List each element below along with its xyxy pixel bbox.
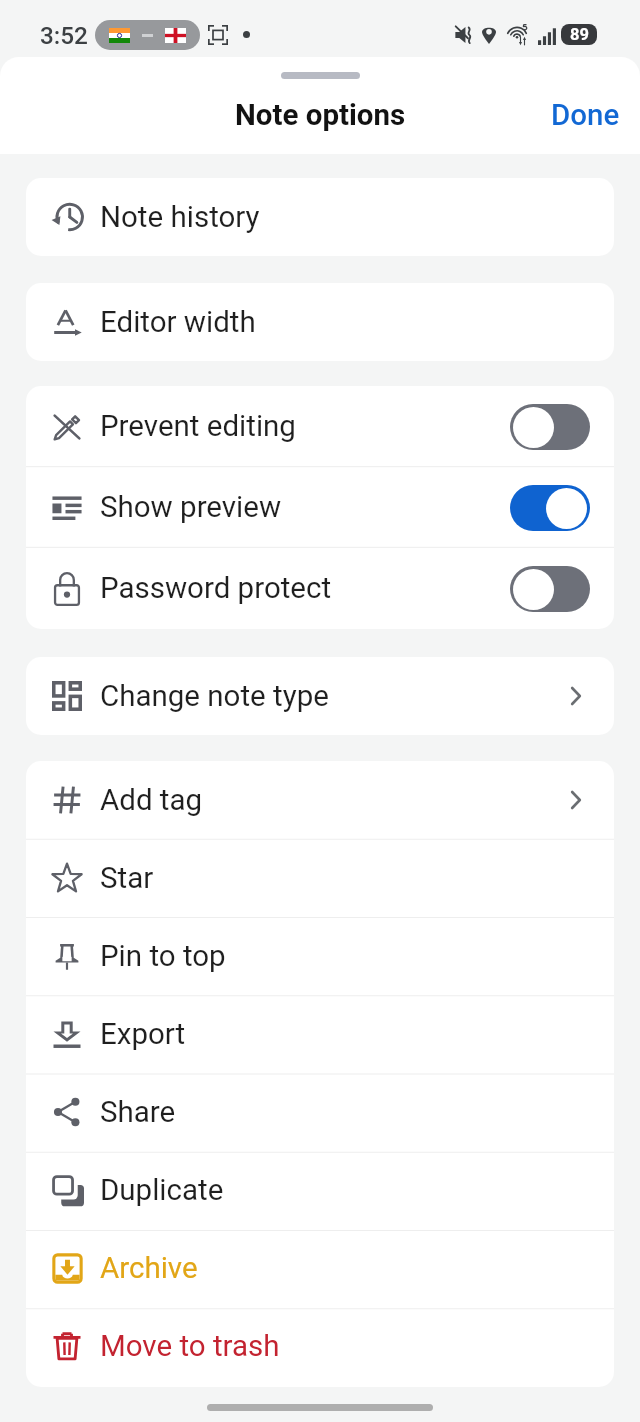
staticText: Note options bbox=[235, 98, 406, 133]
staticText: Password protect bbox=[100, 571, 332, 606]
button[interactable]: On bbox=[510, 485, 590, 531]
staticText: Show preview bbox=[100, 490, 282, 525]
button[interactable]: Move to trash bbox=[26, 1307, 614, 1385]
button[interactable]: Off bbox=[510, 404, 590, 450]
staticText: Editor width bbox=[100, 305, 256, 340]
button[interactable]: Show preview bbox=[26, 467, 614, 548]
other: Screenshot bbox=[208, 25, 228, 45]
button[interactable]: Password protect bbox=[26, 548, 614, 629]
button[interactable]: Archive bbox=[26, 1229, 614, 1307]
button[interactable]: Pin to top bbox=[26, 917, 614, 995]
staticText: Pin to top bbox=[100, 939, 226, 974]
staticText: Done bbox=[551, 98, 620, 133]
staticText: Prevent editing bbox=[100, 409, 296, 444]
other: Signal bbox=[538, 26, 557, 45]
staticText: Export bbox=[100, 1017, 186, 1052]
button[interactable]: Duplicate bbox=[26, 1151, 614, 1229]
staticText: 3:52 bbox=[40, 21, 88, 49]
staticText: Share bbox=[100, 1095, 176, 1130]
button[interactable]: Editor width bbox=[26, 283, 614, 361]
button[interactable]: Share bbox=[26, 1073, 614, 1151]
staticText: Archive bbox=[100, 1251, 198, 1286]
button[interactable]: Change note type bbox=[26, 657, 614, 735]
staticText: Change note type bbox=[100, 679, 329, 714]
button[interactable]: Done bbox=[531, 88, 640, 143]
staticText: Duplicate bbox=[100, 1173, 224, 1208]
staticText: 89 bbox=[570, 25, 589, 44]
button[interactable]: Prevent editing bbox=[26, 386, 614, 467]
button[interactable]: Export bbox=[26, 995, 614, 1073]
staticText: Note history bbox=[100, 200, 260, 235]
button[interactable]: Star bbox=[26, 839, 614, 917]
button[interactable]: Note history bbox=[26, 178, 614, 256]
button[interactable]: Add tag bbox=[26, 761, 614, 839]
other: Silent bbox=[455, 26, 473, 44]
other: Wifi bbox=[508, 24, 533, 46]
staticText: Star bbox=[100, 861, 154, 896]
button[interactable]: Off bbox=[510, 566, 590, 612]
other: Location bbox=[482, 25, 496, 44]
staticText: Add tag bbox=[100, 783, 203, 818]
staticText: Move to trash bbox=[100, 1329, 280, 1364]
